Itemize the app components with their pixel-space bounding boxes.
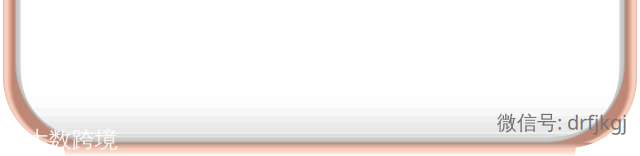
- staticText: 微信号: drfjkgj: [497, 109, 627, 135]
- staticText: 大数跨境: [26, 126, 118, 154]
